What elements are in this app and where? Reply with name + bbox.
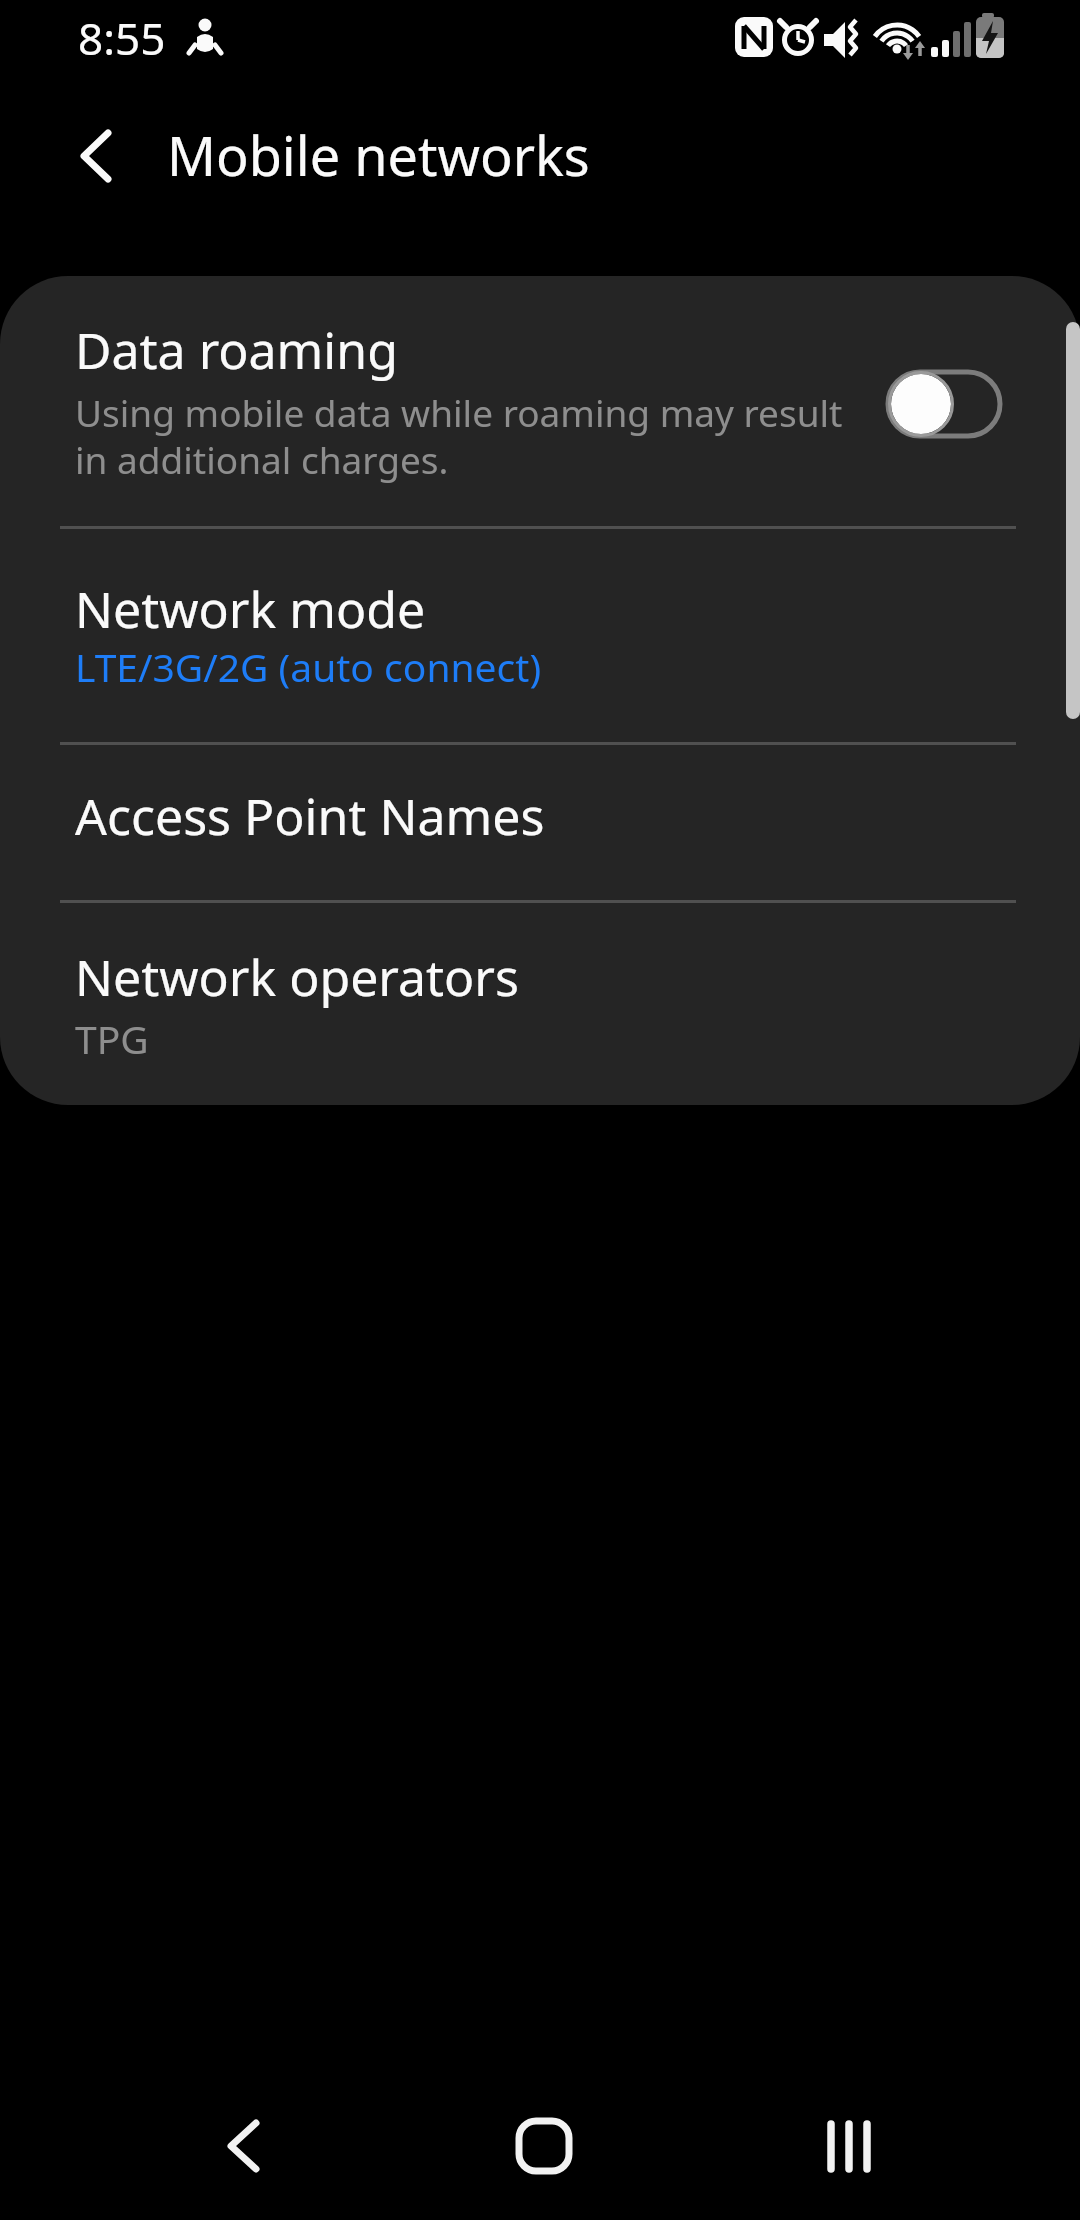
button[interactable] xyxy=(784,2080,914,2210)
button[interactable]: Network mode xyxy=(0,529,1080,742)
staticText: TPG xyxy=(75,1012,149,1065)
staticText: Using mobile data while roaming may resu… xyxy=(75,387,875,485)
button[interactable] xyxy=(178,2080,308,2210)
button[interactable]: Data roaming xyxy=(0,276,1080,526)
button[interactable]: Access Point Names xyxy=(0,745,1080,900)
staticText: Mobile networks xyxy=(167,118,590,192)
button[interactable] xyxy=(860,340,1030,450)
staticText: 8:55 xyxy=(78,8,166,68)
button[interactable] xyxy=(58,115,138,200)
staticText: Data roaming xyxy=(75,316,398,384)
staticText: LTE/3G/2G (auto connect) xyxy=(75,640,542,693)
button[interactable]: Network operators xyxy=(0,903,1080,1105)
button[interactable] xyxy=(479,2080,609,2210)
staticText: Network mode xyxy=(75,575,426,643)
staticText: Access Point Names xyxy=(75,782,545,850)
staticText: Network operators xyxy=(75,943,519,1011)
